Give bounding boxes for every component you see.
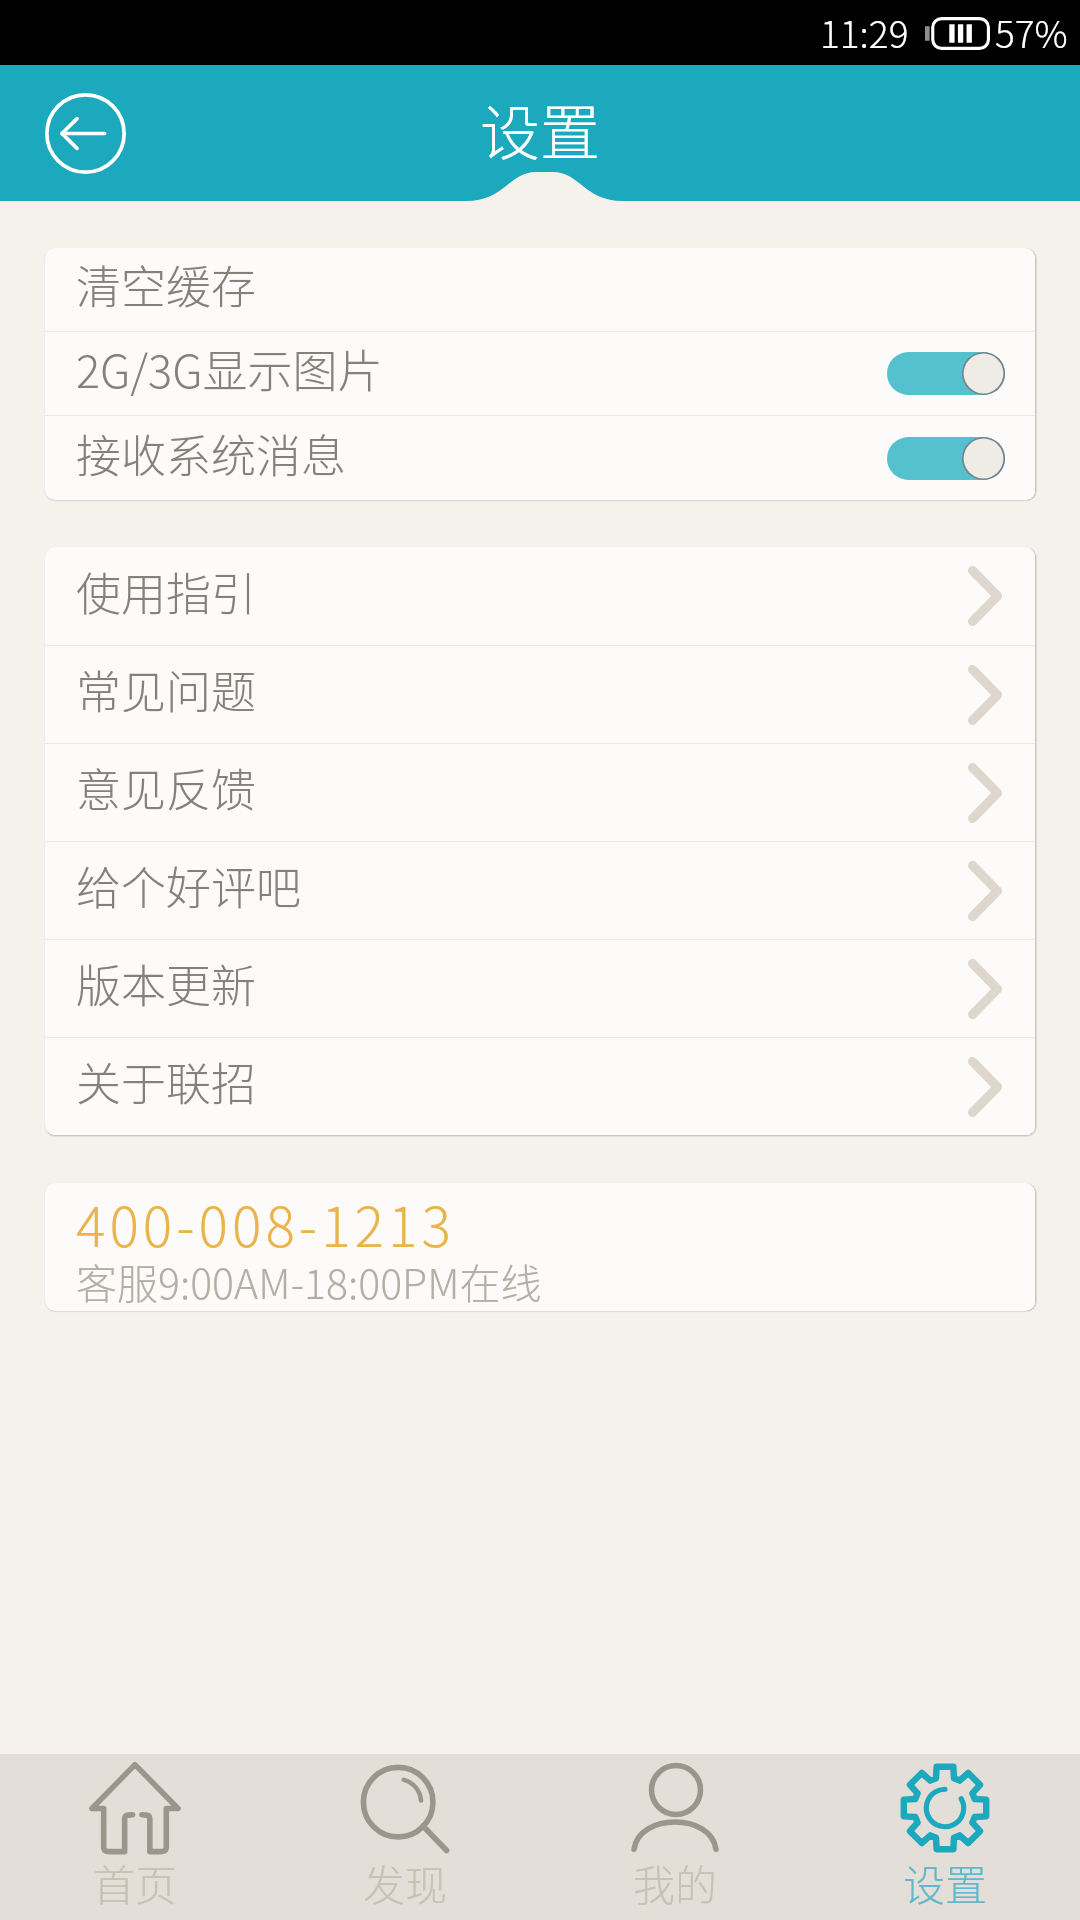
staticText: 接收系统消息: [76, 421, 347, 486]
button[interactable]: 设置: [810, 1754, 1080, 1920]
staticText: 400-008-1213: [76, 1183, 455, 1263]
staticText: 版本更新: [76, 951, 257, 1016]
staticText: 11:29: [820, 5, 909, 59]
button[interactable]: 400-008-1213: [45, 1183, 1035, 1311]
staticText: 清空缓存: [76, 252, 257, 317]
staticText: 发现: [363, 1852, 448, 1913]
staticText: 客服9:00AM-18:00PM在线: [76, 1251, 542, 1310]
staticText: 使用指引: [76, 559, 257, 624]
staticText: 关于联招: [76, 1049, 257, 1114]
button[interactable]: 意见反馈: [45, 744, 1035, 841]
button[interactable]: 常见问题: [45, 646, 1035, 743]
button[interactable]: 清空缓存: [45, 248, 1035, 331]
button[interactable]: 我的: [540, 1754, 810, 1920]
button[interactable]: Back: [45, 93, 126, 174]
button[interactable]: 版本更新: [45, 940, 1035, 1037]
button[interactable]: 首页: [0, 1754, 270, 1920]
button[interactable]: 发现: [270, 1754, 540, 1920]
staticText: 设置: [903, 1852, 988, 1913]
button[interactable]: 关于联招: [45, 1038, 1035, 1135]
staticText: 意见反馈: [76, 755, 257, 820]
staticText: 常见问题: [76, 657, 257, 722]
staticText: 设置: [480, 85, 600, 172]
staticText: 2G/3G显示图片: [76, 336, 383, 401]
button[interactable]: 使用指引: [45, 547, 1035, 645]
button[interactable]: 给个好评吧: [45, 842, 1035, 939]
button[interactable]: 接收系统消息: [45, 416, 1035, 500]
staticText: 给个好评吧: [76, 853, 302, 918]
staticText: 57%: [995, 5, 1068, 59]
staticText: 我的: [633, 1852, 718, 1913]
button[interactable]: 2G/3G显示图片: [45, 332, 1035, 415]
staticText: 首页: [93, 1852, 178, 1913]
